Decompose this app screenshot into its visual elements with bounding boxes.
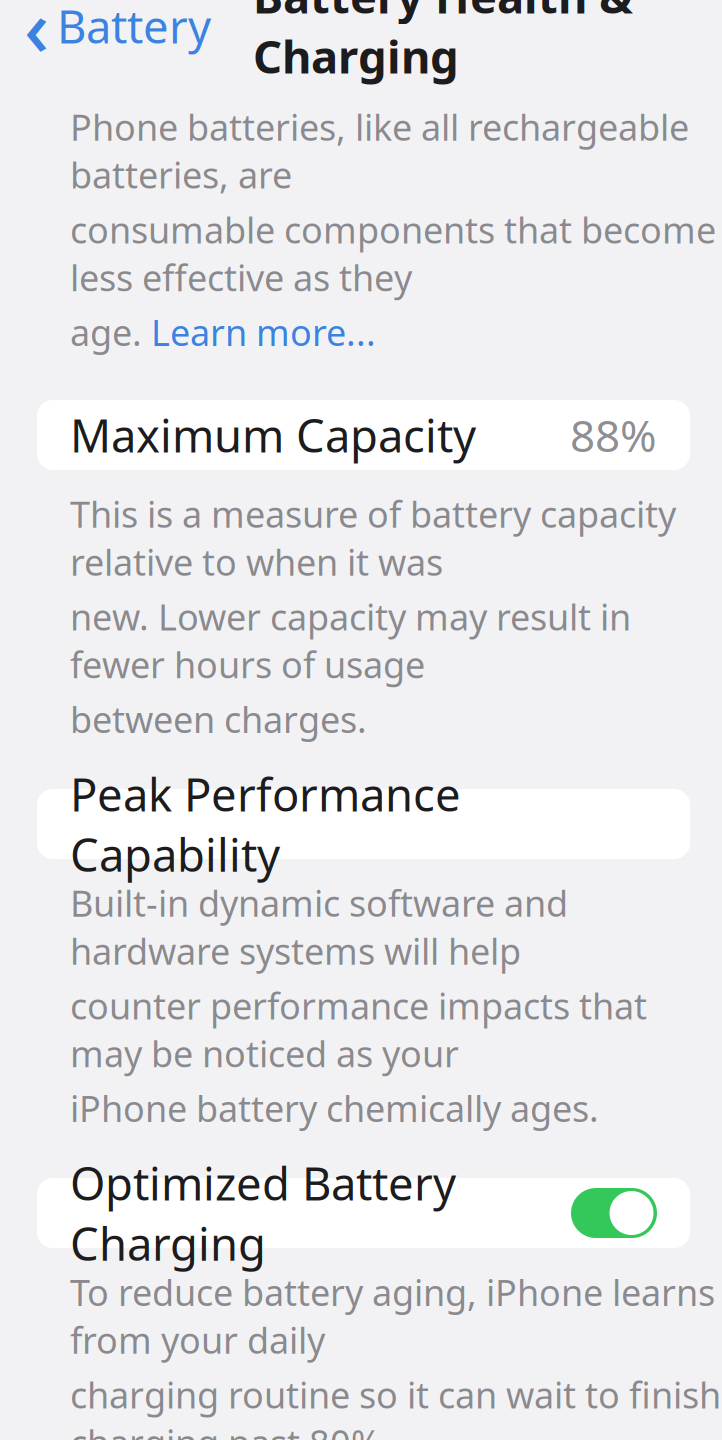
staticText: consumable components that become less e… bbox=[70, 205, 716, 301]
staticText: 88% bbox=[570, 406, 657, 464]
staticText: new. Lower capacity may result in fewer … bbox=[70, 593, 631, 688]
staticText: counter performance impacts that may be … bbox=[70, 982, 647, 1077]
staticText: Optimized Battery Charging bbox=[70, 1153, 456, 1273]
staticText: charging routine so it can wait to finis… bbox=[70, 1371, 721, 1440]
staticText: ‹ bbox=[24, 0, 49, 77]
staticText: This is a measure of battery capacity re… bbox=[70, 490, 676, 586]
staticText: Battery bbox=[57, 0, 211, 56]
staticText: iPhone battery chemically ages. bbox=[70, 1084, 599, 1132]
staticText: age. bbox=[70, 308, 151, 356]
button[interactable]: Optimized Battery Charging bbox=[37, 1178, 690, 1248]
button[interactable]: Learn more... bbox=[151, 308, 376, 356]
button[interactable]: ‹ bbox=[0, 0, 217, 83]
staticText: between charges. bbox=[70, 695, 367, 743]
staticText: Peak Performance Capability bbox=[70, 764, 461, 884]
button[interactable]: Peak Performance Capability bbox=[37, 789, 690, 859]
staticText: To reduce battery aging, iPhone learns f… bbox=[70, 1268, 715, 1364]
staticText: Phone batteries, like all rechargeable b… bbox=[70, 103, 689, 198]
staticText: Maximum Capacity bbox=[70, 405, 476, 465]
button[interactable]: Maximum Capacity bbox=[37, 400, 690, 470]
staticText: Built-in dynamic software and hardware s… bbox=[70, 879, 568, 975]
staticText: Battery Health & Charging bbox=[253, 0, 633, 86]
staticText: Learn more... bbox=[151, 308, 376, 356]
